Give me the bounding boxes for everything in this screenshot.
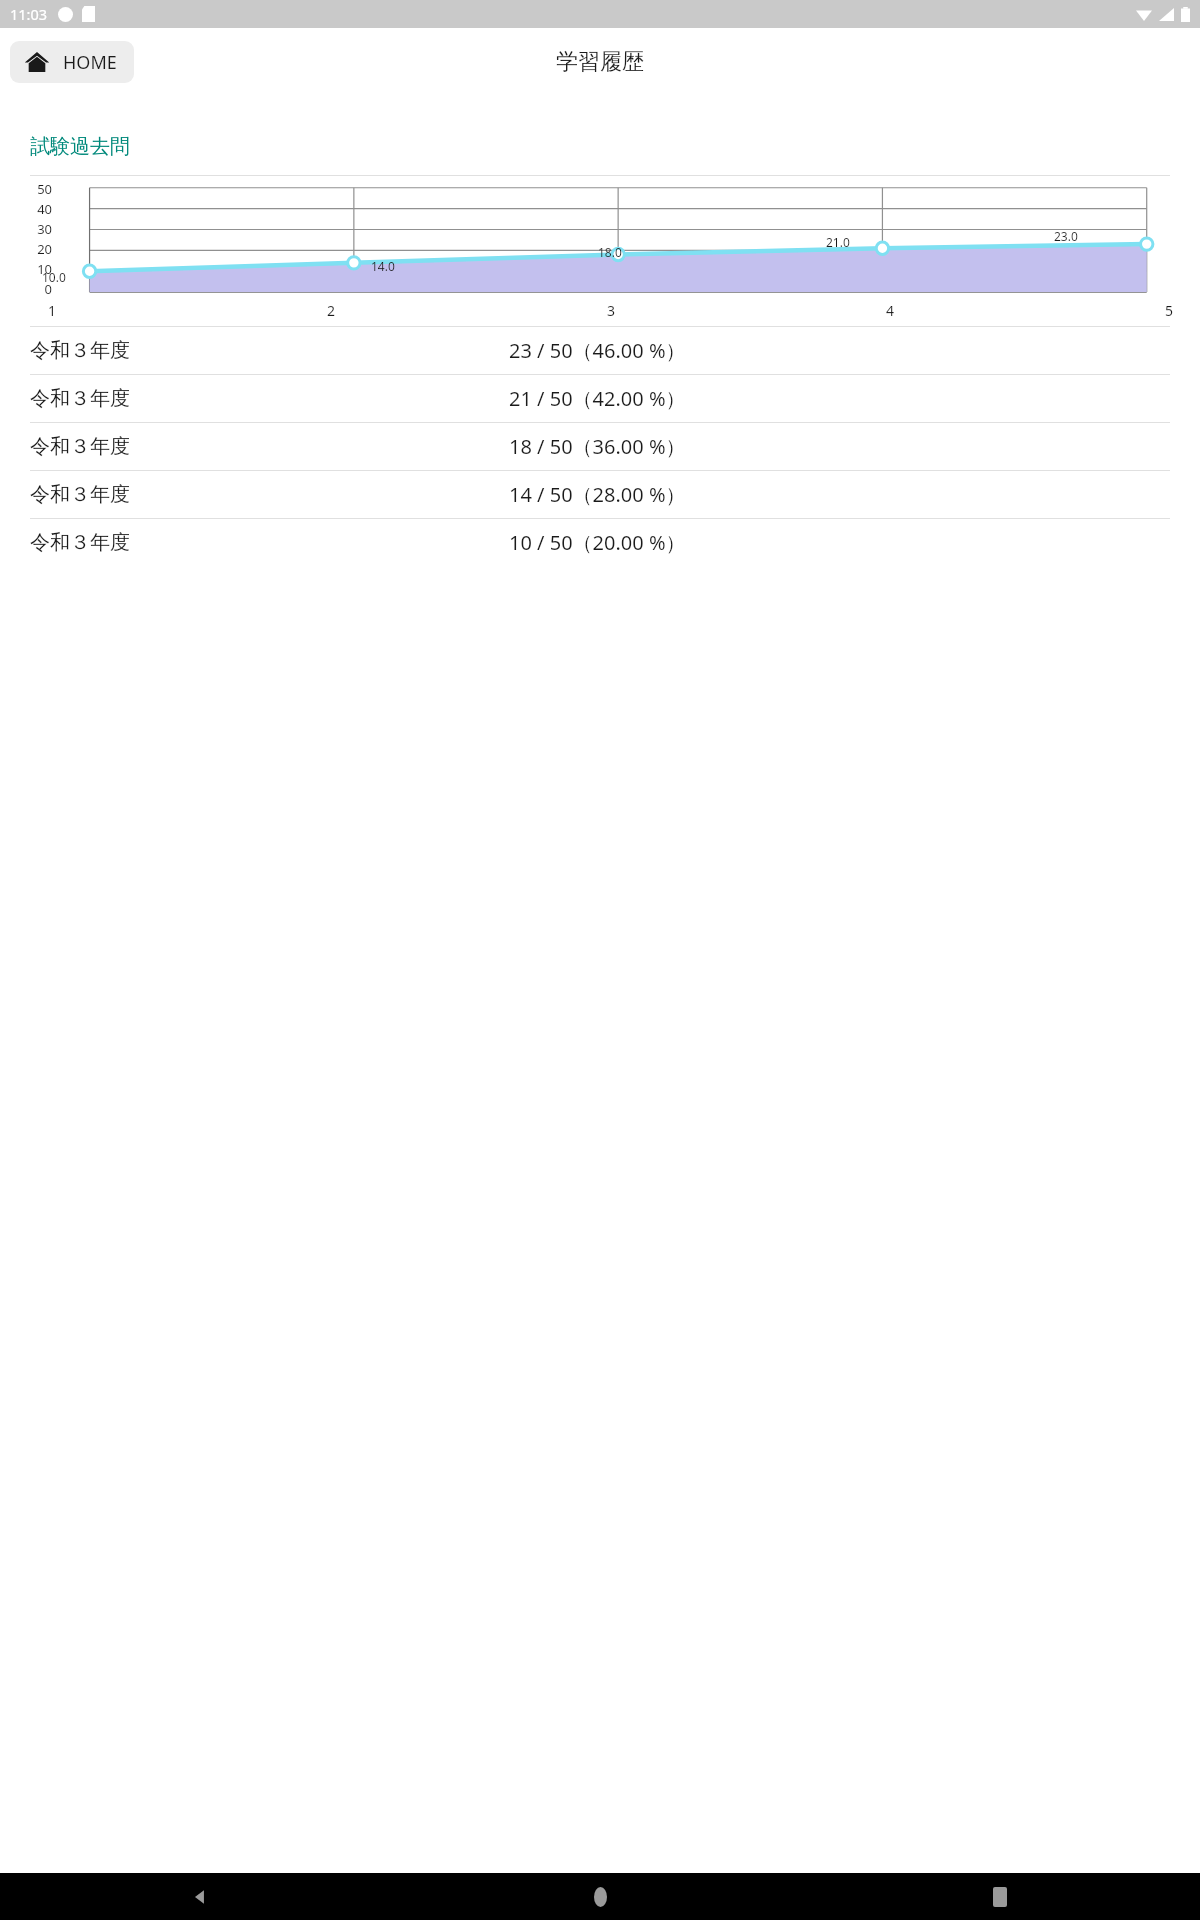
staticText: 令和３年度 (30, 434, 509, 459)
staticText: 10.0 (42, 269, 66, 285)
staticText: 10 (37, 260, 52, 278)
button[interactable]: Back (0, 1873, 400, 1920)
staticText: 23 / 50（46.00 %） (509, 337, 1170, 364)
staticText: 21.0 (826, 234, 850, 250)
button[interactable]: 令和３年度 (12, 423, 1188, 470)
staticText: 14.0 (371, 258, 395, 274)
staticText: 50 (37, 180, 52, 198)
staticText: 10 / 50（20.00 %） (509, 529, 1170, 556)
button[interactable]: 令和３年度 (12, 375, 1188, 422)
button[interactable]: Home (400, 1873, 800, 1920)
staticText: 令和３年度 (30, 338, 509, 363)
staticText: 30 (37, 220, 52, 238)
staticText: 0 (44, 280, 52, 298)
staticText: 2 (327, 301, 336, 320)
staticText: 4 (886, 301, 895, 320)
staticText: 18 / 50（36.00 %） (509, 433, 1170, 460)
staticText: 試験過去問 (30, 134, 130, 159)
staticText: 11:03 (10, 4, 48, 24)
staticText: 3 (607, 301, 616, 320)
staticText: 23.0 (1054, 228, 1078, 244)
staticText: 令和３年度 (30, 482, 509, 507)
button[interactable]: 令和３年度 (12, 327, 1188, 374)
staticText: 1 (48, 301, 57, 320)
staticText: HOME (63, 50, 117, 75)
staticText: 5 (1165, 301, 1174, 320)
staticText: 令和３年度 (30, 530, 509, 555)
staticText: 14 / 50（28.00 %） (509, 481, 1170, 508)
staticText: 令和３年度 (30, 386, 509, 411)
staticText: 18.0 (598, 244, 622, 260)
staticText: 40 (37, 200, 52, 218)
staticText: 学習履歴 (556, 48, 644, 76)
button[interactable]: 令和３年度 (12, 519, 1188, 566)
button[interactable]: Recent apps (800, 1873, 1200, 1920)
staticText: 21 / 50（42.00 %） (509, 385, 1170, 412)
button[interactable]: 令和３年度 (12, 471, 1188, 518)
button[interactable]: HOME (10, 41, 134, 83)
staticText: 20 (37, 240, 52, 258)
